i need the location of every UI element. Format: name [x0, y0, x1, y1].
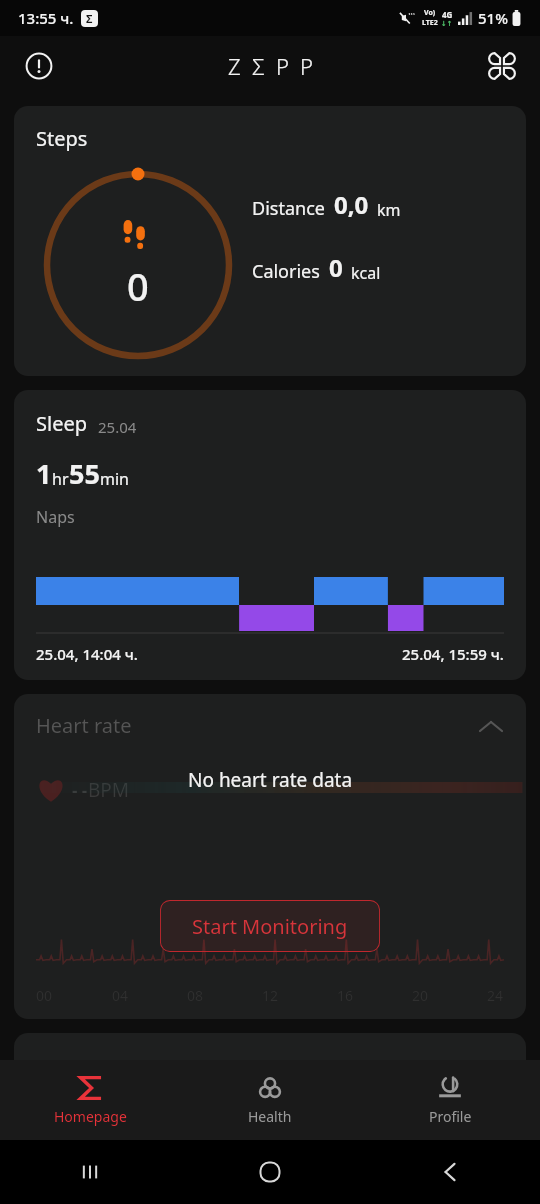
button[interactable]: Health [180, 1060, 360, 1140]
staticText: P [276, 51, 289, 81]
button[interactable]: Sleep [14, 390, 526, 680]
button[interactable]: Back [360, 1140, 540, 1204]
button[interactable]: Start Monitoring [160, 900, 380, 952]
staticText: - - [72, 779, 88, 802]
staticText: 0 [329, 251, 343, 284]
staticText: 25.04 [98, 417, 137, 437]
staticText: Distance [252, 196, 325, 221]
staticText: min [100, 468, 129, 490]
staticText: 13:55 ч. [18, 8, 74, 28]
staticText: 00 [36, 986, 53, 1005]
button[interactable]: Steps [14, 106, 526, 376]
staticText: 08 [187, 986, 204, 1005]
staticText: Heart rate [36, 712, 132, 739]
staticText: 04 [112, 986, 129, 1005]
staticText: Start Monitoring [192, 913, 348, 940]
staticText: Steps [36, 125, 88, 152]
staticText: 25.04, 15:59 ч. [402, 644, 504, 664]
staticText: kcal [351, 262, 381, 284]
button[interactable]: Home [180, 1140, 360, 1204]
staticText: ↓↑ [441, 20, 453, 28]
button[interactable]: Recents [0, 1140, 180, 1204]
staticText: LTE2 [422, 18, 438, 28]
staticText: Calories [252, 259, 320, 284]
button[interactable]: Alerts [18, 45, 60, 87]
staticText: 0,0 [334, 188, 369, 221]
staticText: Σ [86, 11, 93, 26]
staticText: Σ [252, 51, 265, 81]
button[interactable]: Profile [360, 1060, 540, 1140]
staticText: 1 [36, 455, 52, 492]
staticText: 4G [442, 9, 453, 20]
staticText: 24 [487, 986, 504, 1005]
staticText: Health [248, 1107, 292, 1126]
staticText: hr [52, 468, 69, 490]
staticText: P [300, 51, 313, 81]
staticText: Z [228, 51, 241, 81]
staticText: Homepage [54, 1107, 127, 1126]
button[interactable]: Homepage [0, 1060, 180, 1140]
button[interactable]: Devices [480, 44, 524, 88]
staticText: Sleep [36, 410, 87, 437]
staticText: Profile [429, 1107, 472, 1126]
staticText: Naps [36, 506, 75, 528]
staticText: 0 [127, 260, 149, 312]
staticText: Vo) [424, 8, 436, 18]
staticText: No heart rate data [188, 767, 353, 793]
staticText: 25.04, 14:04 ч. [36, 644, 138, 664]
staticText: 12 [262, 986, 279, 1005]
staticText: BPM [88, 777, 130, 803]
staticText: 55 [69, 455, 100, 492]
staticText: 20 [412, 986, 429, 1005]
staticText: 16 [337, 986, 354, 1005]
button[interactable]: Heart rate [14, 694, 526, 1019]
staticText: km [377, 199, 401, 221]
staticText: 51% [478, 8, 508, 28]
